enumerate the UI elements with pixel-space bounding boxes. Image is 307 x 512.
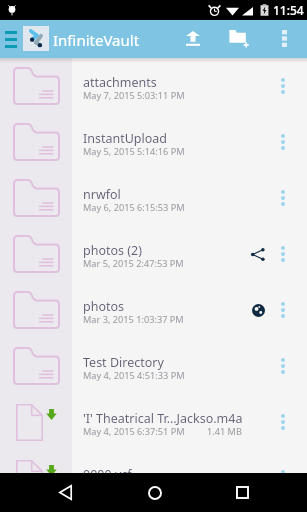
button[interactable]: Home [125, 473, 185, 512]
button[interactable]: Item options [277, 114, 307, 170]
button[interactable]: Public link [246, 290, 270, 330]
button[interactable]: 0000.vcf [0, 450, 307, 506]
staticText: photos (2) [83, 242, 142, 259]
staticText: InfiniteVault [53, 30, 140, 50]
button[interactable]: InstantUpload [0, 114, 307, 170]
staticText: 0000.vcf [83, 466, 132, 483]
button[interactable]: 'I' Theatrical Tr…Jackso.m4a [0, 394, 307, 450]
staticText: May 6, 2015 6:15:53 PM [83, 201, 185, 214]
staticText: Test Directory [83, 354, 164, 371]
button[interactable]: Upload [173, 20, 213, 57]
staticText: nrwfol [83, 186, 121, 203]
staticText: 1.41 MB [207, 425, 242, 438]
button[interactable]: Item options [277, 450, 307, 506]
button[interactable]: Open navigation drawer [0, 20, 21, 58]
staticText: 0.01 MB [207, 481, 242, 494]
staticText: Mar 5, 2015 2:47:53 PM [83, 257, 184, 270]
staticText: May 4, 2015 6:37:51 PM [83, 425, 185, 438]
button[interactable]: Item options [277, 226, 307, 282]
button[interactable]: photos (2) [0, 226, 307, 282]
button[interactable]: Test Directory [0, 338, 307, 394]
staticText: attachments [83, 74, 157, 91]
button[interactable]: New folder [219, 20, 259, 57]
staticText: May 4, 2015 6:30:02 PM [83, 481, 185, 494]
button[interactable]: Item options [277, 170, 307, 226]
staticText: May 4, 2015 4:51:33 PM [83, 369, 185, 382]
button[interactable]: Share [246, 234, 270, 274]
button[interactable]: attachments [0, 58, 307, 114]
staticText: May 7, 2015 5:03:11 PM [83, 89, 185, 102]
button[interactable]: photos [0, 282, 307, 338]
staticText: 'I' Theatrical Tr…Jackso.m4a [83, 410, 243, 427]
staticText: May 5, 2015 5:14:16 PM [83, 145, 185, 158]
button[interactable]: Back [35, 473, 95, 512]
staticText: InstantUpload [83, 130, 168, 147]
button[interactable]: Item options [277, 394, 307, 450]
staticText: 11:54 [273, 2, 304, 18]
button[interactable]: More options [267, 20, 302, 57]
button[interactable]: Recent apps [212, 473, 272, 512]
button[interactable]: nrwfol [0, 170, 307, 226]
staticText: Mar 3, 2015 1:03:37 PM [83, 313, 184, 326]
button[interactable]: Item options [277, 282, 307, 338]
button[interactable]: Item options [277, 58, 307, 114]
button[interactable]: Item options [277, 338, 307, 394]
staticText: photos [83, 298, 125, 315]
